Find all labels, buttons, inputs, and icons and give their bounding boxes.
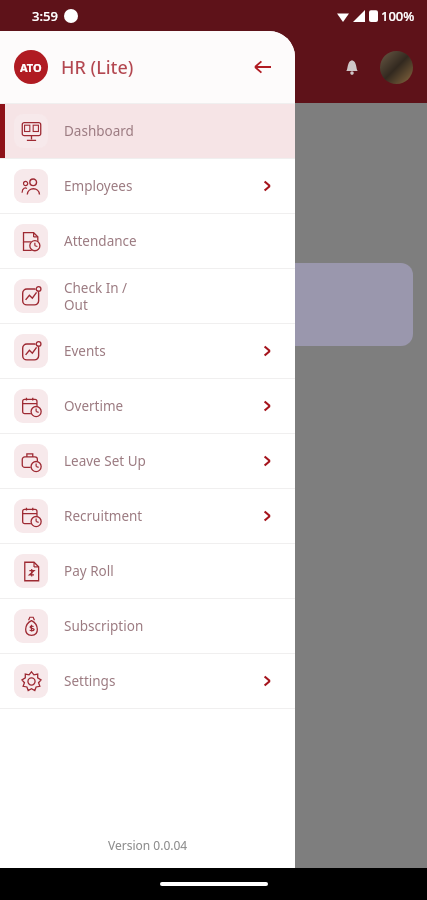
staticText: 3:59 (32, 7, 58, 25)
staticText: Check In / Out (64, 279, 128, 314)
staticText: Leave (18, 508, 54, 526)
button[interactable]: Settings (0, 654, 295, 708)
staticText: Leave Set Up (64, 452, 146, 470)
staticText: Manage approval of leave (18, 191, 200, 211)
button[interactable]: Leave Set Up (0, 434, 295, 488)
staticText: Late (18, 483, 45, 501)
staticText: Settings (64, 672, 116, 690)
staticText: Add Employees (30, 295, 138, 315)
button[interactable]: Employees (0, 159, 295, 213)
button[interactable]: Pay Roll (0, 544, 295, 598)
staticText: HR (Lite) (61, 55, 134, 80)
staticText: Attendance (64, 232, 137, 250)
button[interactable]: Overtime (0, 379, 295, 433)
staticText: Events (64, 342, 106, 360)
staticText: Employees (64, 177, 133, 195)
button[interactable]: Subscription (0, 599, 295, 653)
staticText: Pay Roll (64, 562, 114, 580)
button[interactable]: Attendance (0, 214, 295, 268)
staticText: Version 0.0.04 (108, 837, 188, 853)
staticText: Present (18, 408, 65, 426)
staticText: Dashboard (64, 122, 134, 140)
staticText: 100% (381, 7, 415, 25)
button[interactable]: Events (0, 324, 295, 378)
button[interactable]: Close drawer (245, 49, 281, 85)
staticText: Vacation (18, 458, 71, 476)
button[interactable]: Check In / Out (0, 269, 295, 323)
button[interactable]: Profile (380, 51, 413, 84)
staticText: Recruitment (64, 507, 143, 525)
staticText: ATO (20, 60, 42, 75)
button[interactable]: Recruitment (0, 489, 295, 543)
staticText: Absent (18, 433, 61, 451)
button[interactable]: Dashboard (0, 104, 295, 158)
staticText: Subscription (64, 617, 144, 635)
staticText: Overtime (64, 397, 124, 415)
button[interactable]: Notifications (334, 49, 370, 85)
